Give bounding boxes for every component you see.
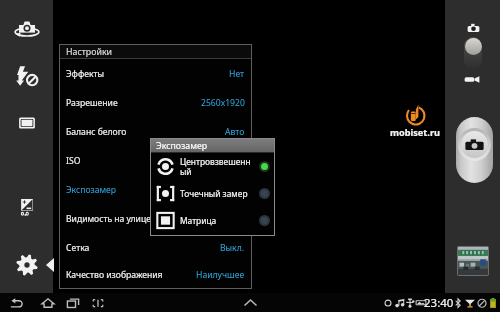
- staticText: Баланс белого: [66, 126, 127, 138]
- button[interactable]: Точечный замер: [151, 180, 274, 207]
- button[interactable]: Разрешение: [60, 88, 251, 117]
- button[interactable]: Exposure compensation: [0, 197, 53, 226]
- button[interactable]: Gallery, last photo: [458, 247, 488, 275]
- button[interactable]: Центровзвешенн ый: [151, 153, 274, 180]
- button[interactable]: Эффекты: [60, 59, 251, 88]
- staticText: Точечный замер: [180, 188, 259, 199]
- staticText: Авто: [225, 126, 245, 138]
- button[interactable]: Photo size: [0, 108, 53, 137]
- button[interactable]: Баланс белого: [60, 117, 251, 146]
- staticText: Экспозамер: [156, 140, 208, 152]
- staticText: ISO: [66, 155, 81, 167]
- button[interactable]: Show notifications: [239, 293, 261, 312]
- staticText: Матрица: [180, 215, 259, 226]
- button[interactable]: Switch camera / video mode: [464, 37, 482, 69]
- button[interactable]: Photo mode: [467, 23, 480, 33]
- staticText: Разрешение: [66, 97, 118, 109]
- button[interactable]: Video mode: [464, 75, 480, 84]
- button[interactable]: Recent apps: [60, 293, 86, 312]
- staticText: Видимость на улице: [66, 213, 151, 225]
- staticText: mobiset.ru: [390, 126, 440, 139]
- button[interactable]: Screenshot: [85, 293, 111, 312]
- button[interactable]: Качество изображения: [60, 262, 251, 288]
- staticText: Нет: [229, 68, 245, 80]
- staticText: Наилучшее: [196, 269, 245, 281]
- staticText: Настройки: [66, 46, 113, 58]
- button[interactable]: Settings: [0, 250, 53, 279]
- staticText: Качество изображения: [66, 269, 163, 281]
- button[interactable]: Экспозамер: [60, 175, 251, 204]
- staticText: 23:40: [424, 295, 454, 311]
- button[interactable]: Видимость на улице: [60, 204, 251, 233]
- button[interactable]: Матрица: [151, 207, 274, 234]
- staticText: Центровзвешенн ый: [180, 156, 259, 177]
- button[interactable]: ISO: [60, 146, 251, 175]
- button[interactable]: Take photo: [456, 117, 493, 183]
- staticText: 2560x1920: [201, 97, 245, 109]
- button[interactable]: Home: [35, 293, 61, 312]
- button[interactable]: Back: [4, 293, 30, 312]
- staticText: Сетка: [66, 242, 90, 254]
- staticText: Эффекты: [66, 68, 105, 80]
- staticText: Выкл.: [220, 242, 245, 254]
- other: Settings panel open: [46, 258, 54, 272]
- staticText: Экспозамер: [66, 184, 117, 196]
- button[interactable]: Camera mode: [0, 16, 53, 45]
- button[interactable]: Flash off: [0, 61, 53, 90]
- button[interactable]: Сетка: [60, 233, 251, 262]
- button[interactable]: Status and clock: [382, 293, 500, 312]
